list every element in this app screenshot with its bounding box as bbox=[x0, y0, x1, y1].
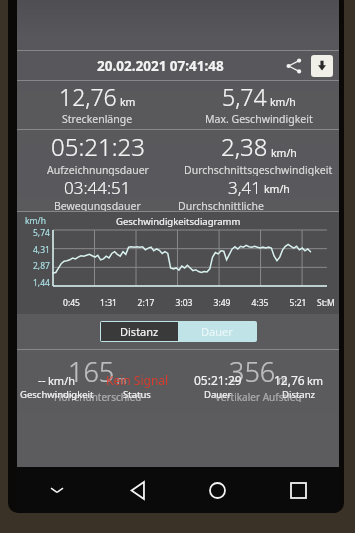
staticText: 2,87 bbox=[33, 260, 50, 272]
button[interactable]: Recents bbox=[258, 467, 339, 513]
staticText: 1,44 bbox=[33, 277, 50, 289]
staticText: 5:21 bbox=[279, 297, 317, 309]
staticText: 5,74 bbox=[222, 81, 267, 112]
staticText: 356 bbox=[229, 353, 276, 390]
staticText: Geschwindigkeitsdiagramm bbox=[116, 215, 241, 228]
staticText: 2,38 bbox=[221, 130, 268, 163]
staticText: 05:21:23 bbox=[51, 130, 145, 163]
staticText: m bbox=[278, 373, 288, 387]
staticText: Streckenlänge bbox=[62, 112, 133, 126]
staticText: km/h bbox=[48, 373, 76, 388]
staticText: 05:21:29 bbox=[194, 372, 242, 388]
staticText: 12,76 bbox=[274, 372, 305, 388]
staticText: 3:03 bbox=[165, 297, 203, 309]
staticText: St:M bbox=[317, 297, 335, 309]
staticText: 1:31 bbox=[90, 297, 127, 309]
staticText: 4:35 bbox=[241, 297, 279, 309]
button[interactable]: 12,76 bbox=[258, 372, 339, 401]
button[interactable]: Back bbox=[97, 467, 177, 513]
staticText: -- bbox=[38, 372, 46, 388]
button[interactable]: Export bbox=[311, 55, 333, 77]
staticText: Dauer bbox=[201, 324, 233, 339]
staticText: Durchschnittsgeschwindigkeit bbox=[184, 163, 333, 176]
staticText: Vertikaler Aufstieg bbox=[215, 390, 302, 402]
staticText: km/h bbox=[271, 146, 297, 160]
staticText: km bbox=[307, 373, 324, 388]
staticText: Distanz bbox=[282, 388, 316, 401]
staticText: Aufzeichnungsdauer bbox=[47, 163, 149, 176]
button[interactable]: -- bbox=[17, 372, 97, 401]
staticText: Geschwindigkeit bbox=[20, 388, 94, 401]
staticText: Bewegungsdauer bbox=[54, 199, 141, 211]
staticText: m bbox=[117, 373, 127, 387]
staticText: 4,31 bbox=[33, 244, 50, 256]
button[interactable]: Share bbox=[281, 53, 307, 79]
button[interactable]: Distanz bbox=[101, 322, 178, 341]
button[interactable]: Hide bbox=[17, 467, 97, 513]
staticText: 165 bbox=[68, 353, 115, 390]
staticText: Status bbox=[123, 388, 151, 401]
staticText: 0:45 bbox=[53, 297, 90, 309]
staticText: km/h bbox=[25, 215, 46, 227]
staticText: Kein Signal bbox=[106, 372, 169, 388]
staticText: Durchschnittliche Bewegungsgeschwin… bbox=[178, 199, 339, 211]
staticText: km bbox=[120, 95, 136, 109]
staticText: km/h bbox=[270, 95, 296, 109]
staticText: 2:17 bbox=[127, 297, 165, 309]
staticText: Dauer bbox=[204, 388, 232, 401]
staticText: 5,74 bbox=[33, 227, 50, 239]
staticText: 03:44:51 bbox=[64, 176, 131, 199]
staticText: 3:49 bbox=[203, 297, 241, 309]
staticText: Distanz bbox=[120, 324, 159, 339]
staticText: 20.02.2021 07:41:48 bbox=[97, 57, 224, 75]
button[interactable]: Dauer bbox=[178, 322, 256, 341]
button[interactable]: 05:21:29 bbox=[177, 372, 258, 401]
staticText: 3,41 bbox=[228, 176, 261, 199]
staticText: Max. Geschwindigkeit bbox=[205, 112, 313, 126]
staticText: km/h bbox=[264, 182, 290, 196]
staticText: Höhenunterschied bbox=[54, 390, 142, 402]
staticText: 12,76 bbox=[59, 81, 117, 112]
button[interactable]: Kein Signal bbox=[97, 372, 177, 401]
button[interactable]: Home bbox=[177, 467, 258, 513]
